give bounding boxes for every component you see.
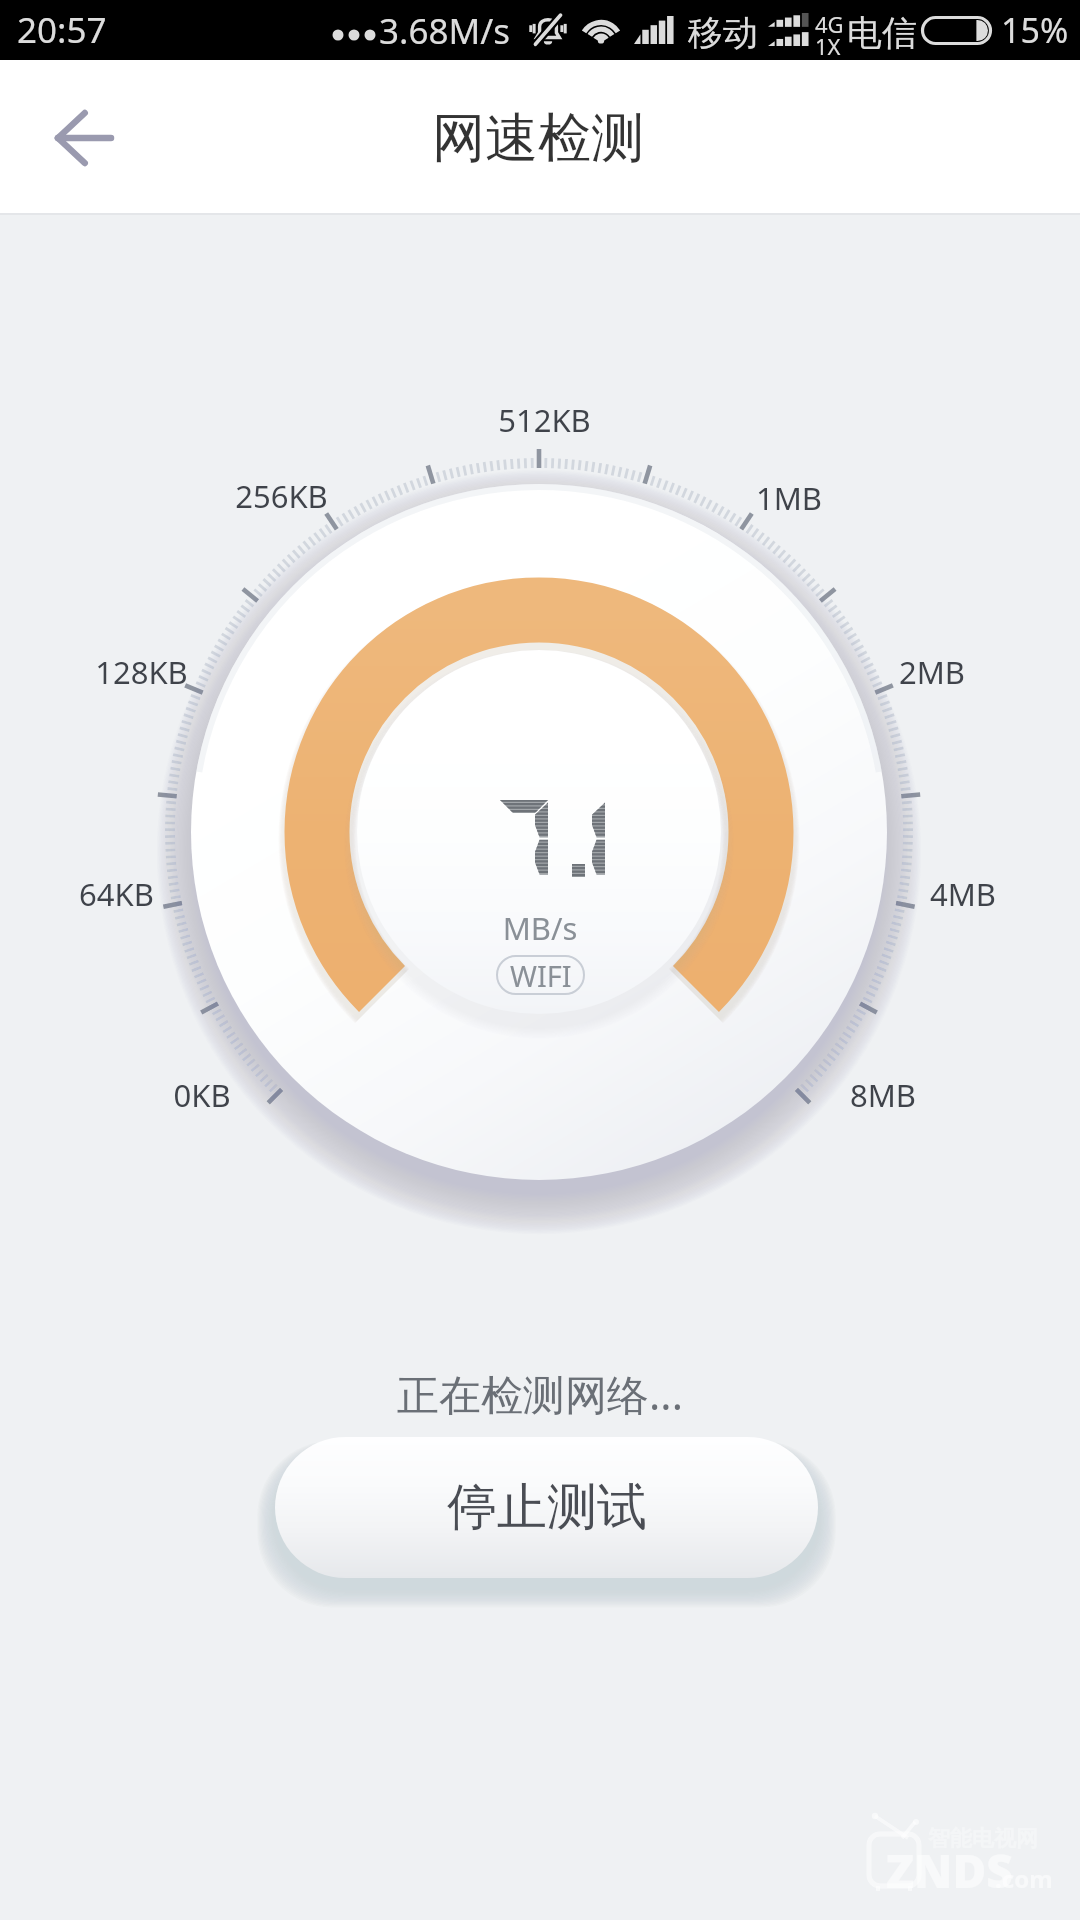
- staticText: MB/s: [0, 907, 1080, 949]
- staticText: 0KB: [173, 1074, 231, 1116]
- staticText: 256KB: [235, 475, 328, 517]
- staticText: WIFI: [510, 956, 572, 995]
- staticText: 4G: [815, 9, 844, 39]
- button[interactable]: 停止测试: [275, 1437, 818, 1578]
- staticText: 3.68M/s: [379, 7, 510, 55]
- staticText: 20:57: [17, 6, 107, 54]
- staticText: 8MB: [850, 1074, 916, 1116]
- staticText: 网速检测: [432, 105, 644, 172]
- staticText: 15%: [1001, 7, 1069, 53]
- staticText: 停止测试: [447, 1476, 647, 1539]
- staticText: 移动: [688, 11, 758, 55]
- staticText: 1MB: [756, 477, 822, 519]
- button[interactable]: Back: [13, 68, 153, 208]
- staticText: 4MB: [930, 873, 996, 915]
- staticText: ZNDS: [886, 1839, 1013, 1902]
- staticText: .com: [995, 1862, 1053, 1895]
- staticText: 512KB: [498, 399, 591, 441]
- staticText: 64KB: [79, 873, 154, 915]
- staticText: 正在检测网络...: [0, 1365, 1080, 1422]
- staticText: 2MB: [899, 651, 965, 693]
- staticText: 128KB: [95, 651, 188, 693]
- staticText: 电信: [847, 11, 917, 55]
- staticText: 1X: [815, 31, 841, 61]
